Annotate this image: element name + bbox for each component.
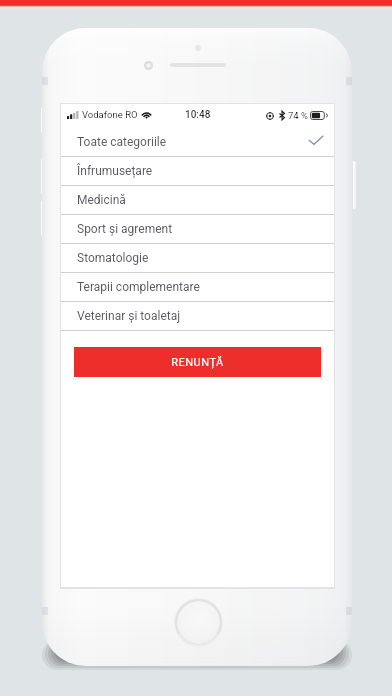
button[interactable]: Home <box>174 598 223 647</box>
button[interactable]: Înfrumusețare <box>61 157 334 185</box>
staticText: Medicină <box>77 193 126 207</box>
staticText: Sport și agrement <box>77 222 173 236</box>
staticText: Toate categoriile <box>77 135 167 149</box>
button[interactable]: Veterinar și toaletaj <box>61 302 334 330</box>
button[interactable]: RENUNȚĂ <box>74 347 321 377</box>
staticText: Vodafone RO <box>82 109 138 120</box>
staticText: Veterinar și toaletaj <box>77 309 181 323</box>
staticText: Stomatologie <box>77 251 149 265</box>
button[interactable]: Toate categoriile <box>61 128 334 156</box>
staticText: RENUNȚĂ <box>171 356 224 369</box>
staticText: 74 % <box>288 110 308 121</box>
button[interactable]: Stomatologie <box>61 244 334 272</box>
button[interactable]: Medicină <box>61 186 334 214</box>
staticText: 10:48 <box>185 109 211 121</box>
staticText: Terapii complementare <box>77 280 200 294</box>
button[interactable]: Sport și agrement <box>61 215 334 243</box>
button[interactable]: Terapii complementare <box>61 273 334 301</box>
staticText: Înfrumusețare <box>77 164 153 178</box>
